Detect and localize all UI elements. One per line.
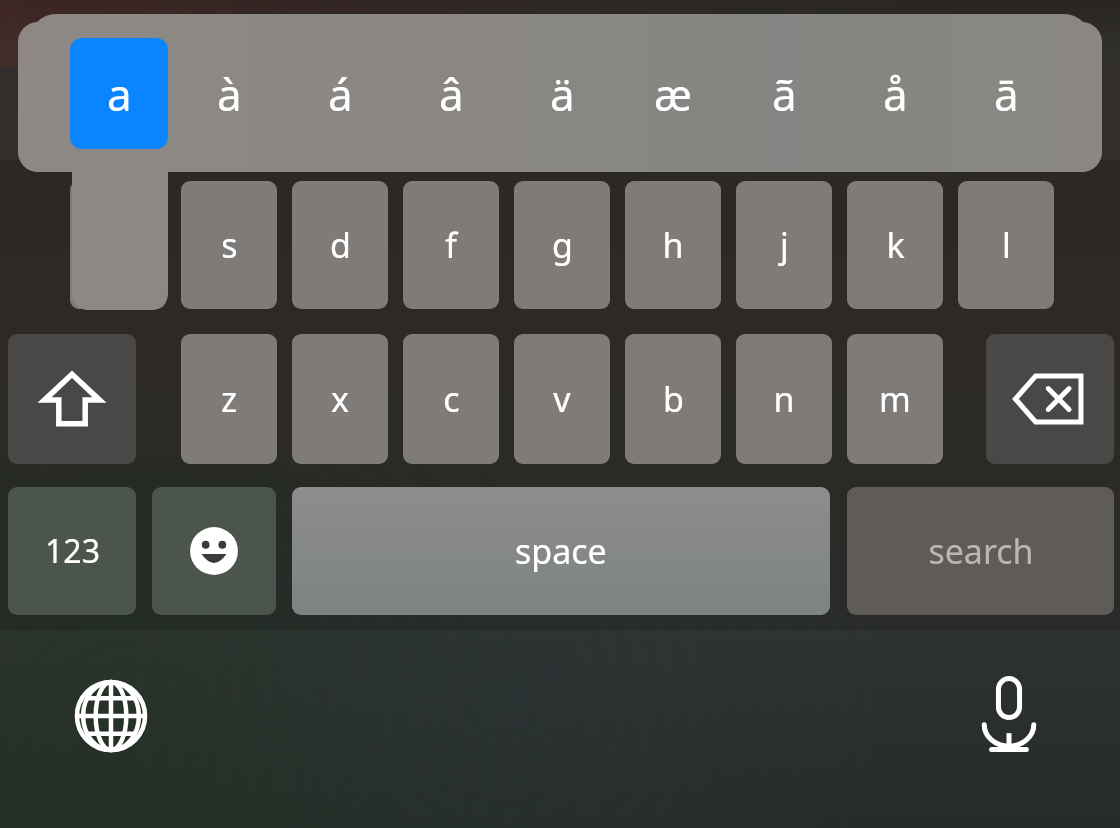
staticText: h	[662, 222, 684, 268]
button[interactable]: m	[847, 334, 943, 464]
staticText: b	[663, 376, 684, 422]
button[interactable]: å	[846, 38, 944, 149]
button[interactable]: c	[403, 334, 499, 464]
staticText: á	[328, 64, 353, 124]
button[interactable]: Dictation	[960, 668, 1058, 764]
button[interactable]: h	[625, 181, 721, 309]
button[interactable]: l	[958, 181, 1054, 309]
button[interactable]: z	[181, 334, 277, 464]
staticText: æ	[654, 64, 693, 124]
staticText: l	[1002, 222, 1011, 268]
button[interactable]: d	[292, 181, 388, 309]
button[interactable]: j	[736, 181, 832, 309]
button[interactable]: f	[403, 181, 499, 309]
staticText: f	[445, 222, 457, 268]
button[interactable]: ã	[735, 38, 833, 149]
button[interactable]: b	[625, 334, 721, 464]
staticText: ã	[772, 64, 797, 124]
button[interactable]: Backspace	[986, 334, 1114, 464]
button[interactable]: space	[292, 487, 830, 615]
button[interactable]: à	[180, 38, 278, 149]
button[interactable]: Change keyboard language	[62, 668, 160, 764]
staticText: c	[443, 376, 460, 422]
button[interactable]: s	[181, 181, 277, 309]
staticText: à	[217, 64, 242, 124]
staticText: x	[331, 376, 349, 422]
staticText: å	[883, 64, 908, 124]
staticText: a	[107, 64, 132, 124]
staticText: n	[773, 376, 795, 422]
staticText: j	[780, 222, 789, 268]
button[interactable]: 123	[8, 487, 136, 615]
button[interactable]: a	[70, 181, 166, 309]
staticText: m	[879, 376, 911, 422]
button[interactable]: a	[70, 38, 168, 149]
staticText: space	[515, 528, 607, 574]
staticText: g	[552, 222, 573, 268]
button[interactable]: Shift	[8, 334, 136, 464]
staticText: ä	[550, 64, 575, 124]
button[interactable]: á	[291, 38, 389, 149]
button[interactable]: ā	[957, 38, 1055, 149]
button[interactable]: search	[847, 487, 1114, 615]
staticText: k	[886, 222, 905, 268]
staticText: s	[221, 222, 238, 268]
staticText: 123	[45, 529, 100, 573]
staticText: ā	[994, 64, 1019, 124]
button[interactable]: â	[402, 38, 500, 149]
staticText: z	[221, 376, 237, 422]
staticText: search	[928, 528, 1034, 574]
button[interactable]: n	[736, 334, 832, 464]
button[interactable]: k	[847, 181, 943, 309]
button[interactable]: v	[514, 334, 610, 464]
button[interactable]: Emoji	[152, 487, 276, 615]
staticText: â	[439, 64, 464, 124]
staticText: d	[330, 222, 351, 268]
staticText: v	[553, 376, 571, 422]
button[interactable]: ä	[513, 38, 611, 149]
button[interactable]: x	[292, 334, 388, 464]
button[interactable]: g	[514, 181, 610, 309]
button[interactable]: æ	[624, 38, 722, 149]
